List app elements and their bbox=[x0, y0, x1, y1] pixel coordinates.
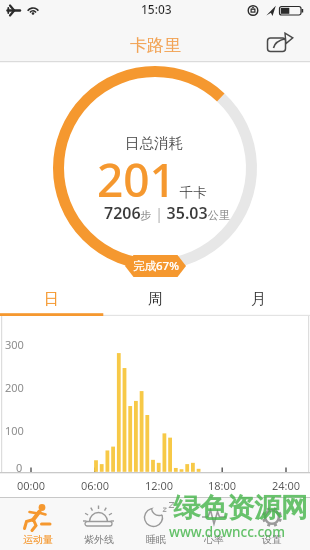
staticText: 00:00 bbox=[17, 478, 46, 493]
button[interactable]: 设置 bbox=[243, 497, 301, 550]
staticText: 100 bbox=[5, 423, 24, 438]
staticText: 06:00 bbox=[81, 478, 110, 493]
staticText: 绿色资源网 bbox=[173, 491, 308, 525]
staticText: 7206步 | 35.03公里 bbox=[104, 202, 230, 224]
staticText: 12:00 bbox=[145, 478, 174, 493]
staticText: 月 bbox=[251, 290, 266, 309]
button[interactable]: 月 bbox=[207, 283, 310, 315]
staticText: 日 bbox=[44, 290, 59, 309]
staticText: 心率 bbox=[204, 533, 224, 546]
button[interactable] bbox=[262, 28, 302, 58]
staticText: 设置 bbox=[262, 533, 282, 546]
button[interactable]: 日 bbox=[0, 283, 103, 315]
staticText: 18:00 bbox=[208, 478, 237, 493]
staticText: www.downcc.com bbox=[169, 523, 286, 541]
button[interactable]: 运动量 bbox=[9, 497, 67, 550]
staticText: 卡路里 bbox=[130, 35, 181, 56]
staticText: 24:00 bbox=[272, 478, 301, 493]
button[interactable]: 周 bbox=[103, 283, 207, 315]
staticText: 睡眠 bbox=[146, 533, 166, 546]
staticText: 完成67% bbox=[133, 258, 179, 274]
staticText: 运动量 bbox=[23, 533, 53, 546]
button[interactable]: 紫外线 bbox=[70, 497, 128, 550]
staticText: 0 bbox=[16, 460, 23, 475]
staticText: 日总消耗 bbox=[125, 134, 183, 152]
staticText: 紫外线 bbox=[84, 533, 114, 546]
button[interactable]: 心率 bbox=[185, 497, 243, 550]
staticText: 周 bbox=[148, 290, 163, 309]
staticText: 201 千卡 bbox=[97, 148, 207, 211]
button[interactable]: 睡眠 bbox=[127, 497, 185, 550]
staticText: 200 bbox=[5, 380, 24, 395]
staticText: 300 bbox=[5, 337, 24, 352]
staticText: 15:03 bbox=[141, 1, 172, 17]
